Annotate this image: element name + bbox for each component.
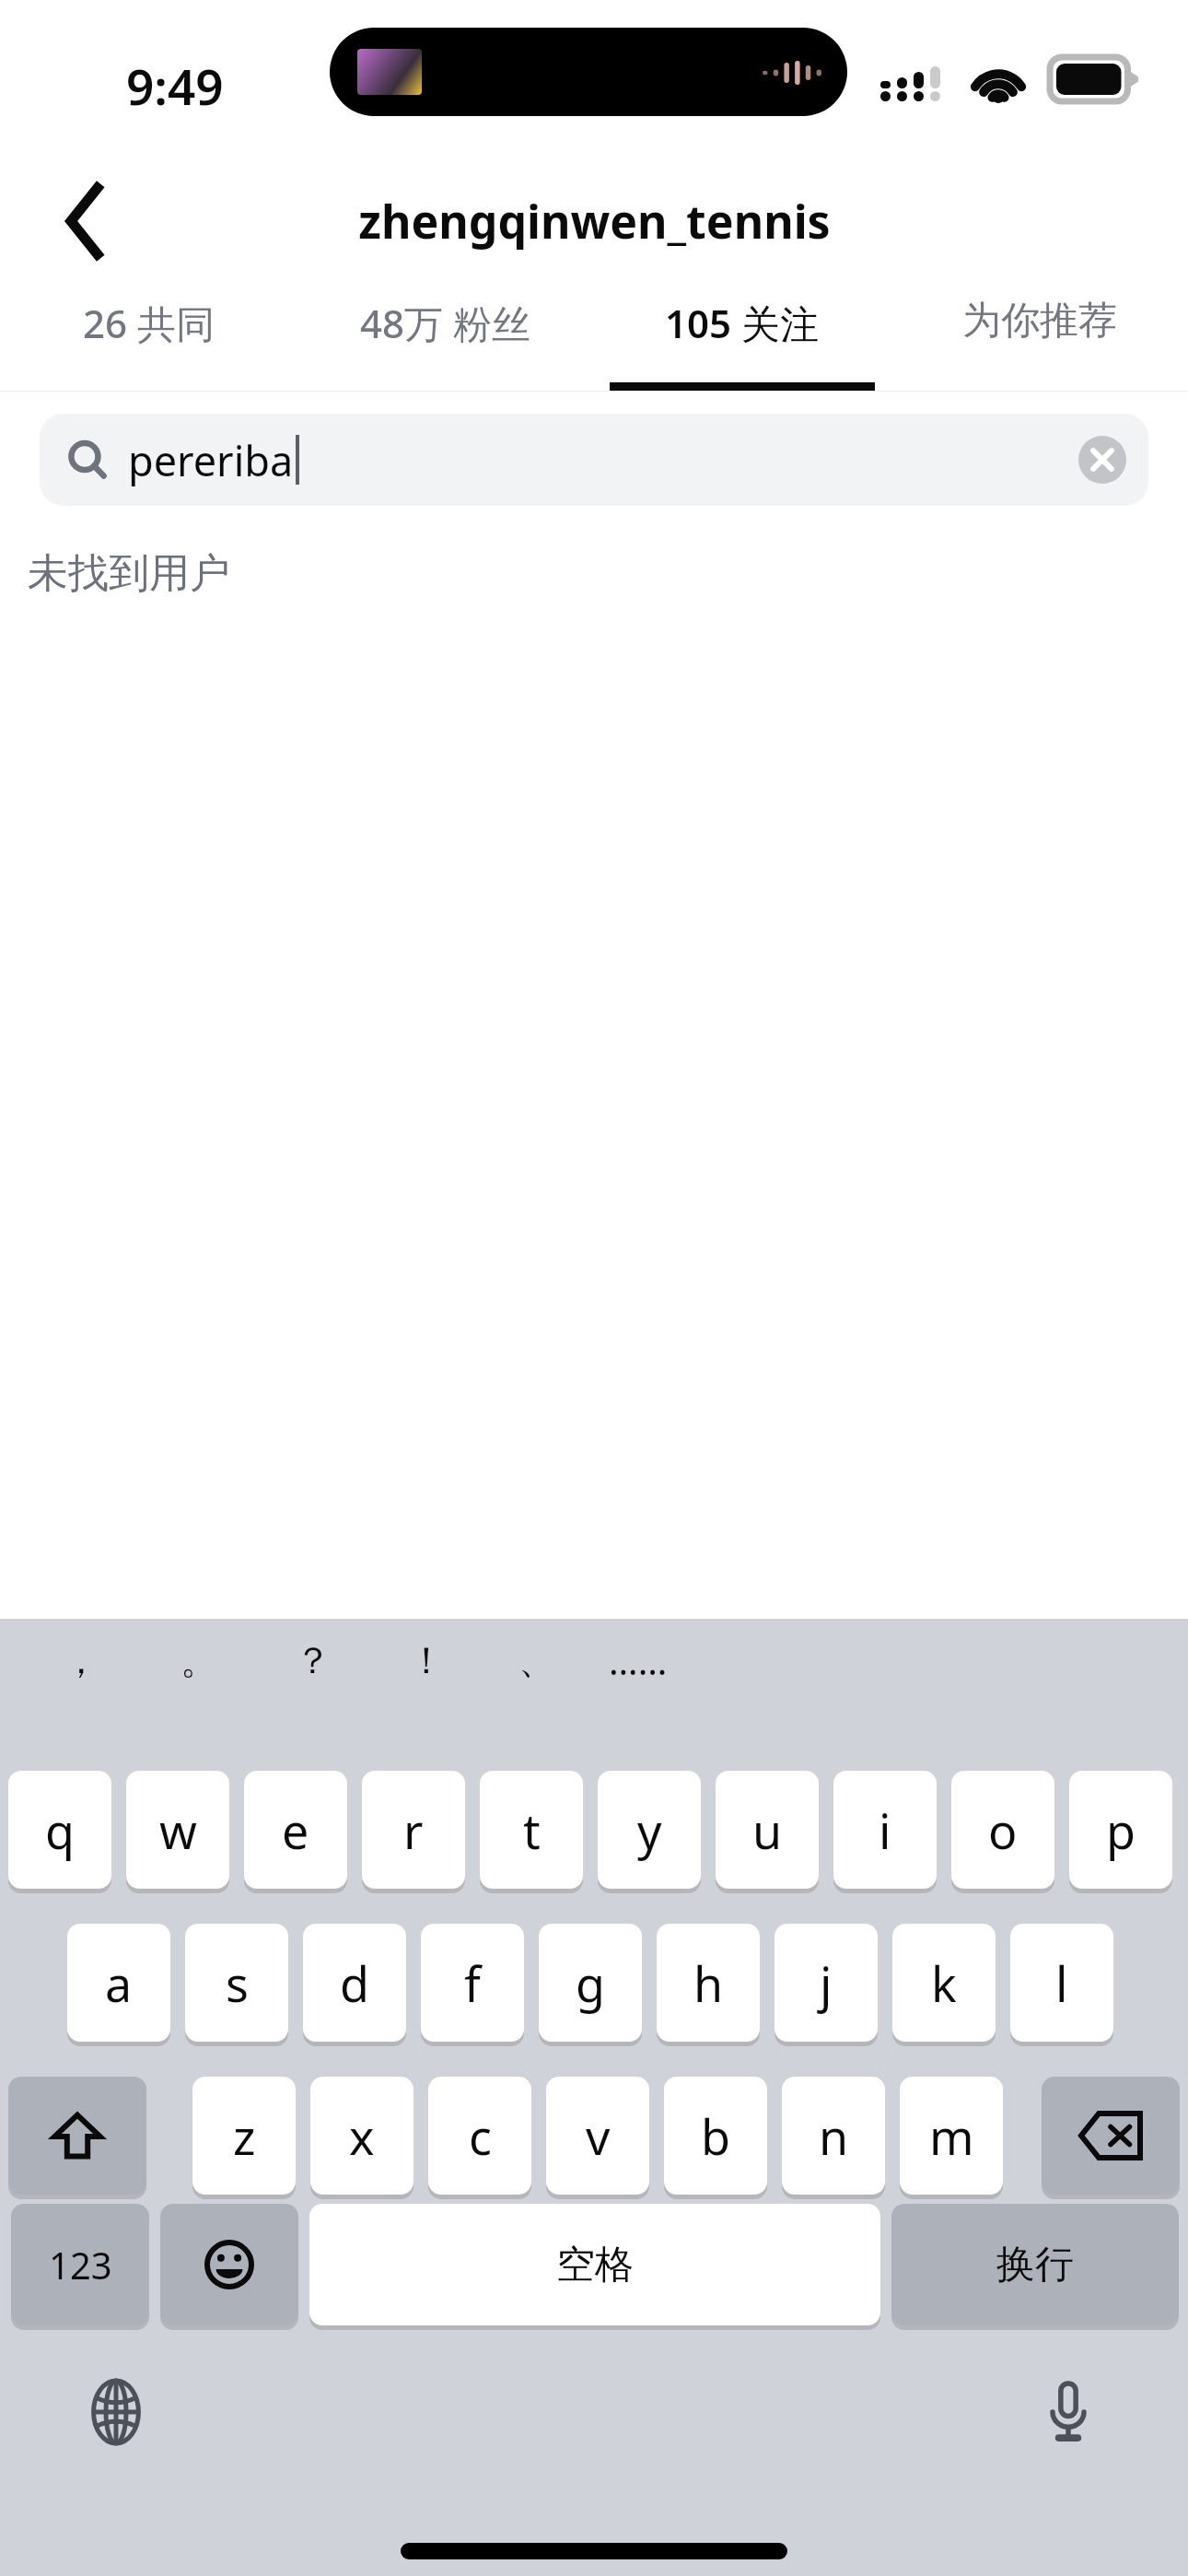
staticText: s bbox=[226, 1950, 249, 2016]
staticText: n bbox=[819, 2103, 849, 2169]
button[interactable]: w bbox=[126, 1771, 229, 1889]
button[interactable]: r bbox=[362, 1771, 465, 1889]
button[interactable]: Backspace bbox=[1042, 2077, 1180, 2195]
button[interactable]: o bbox=[951, 1771, 1054, 1889]
staticText: k bbox=[931, 1950, 957, 2016]
button[interactable]: b bbox=[664, 2077, 767, 2195]
staticText: p bbox=[1106, 1797, 1136, 1863]
button[interactable]: t bbox=[480, 1771, 583, 1889]
button[interactable]: Back bbox=[35, 170, 136, 272]
button[interactable]: pereriba bbox=[40, 414, 1148, 506]
staticText: b bbox=[701, 2103, 730, 2169]
staticText: u bbox=[752, 1797, 783, 1863]
button[interactable]: l bbox=[1010, 1924, 1113, 2042]
button[interactable]: m bbox=[900, 2077, 1003, 2195]
staticText: o bbox=[988, 1797, 1018, 1863]
staticText: i bbox=[879, 1797, 891, 1863]
button[interactable]: y bbox=[598, 1771, 701, 1889]
staticText: h bbox=[693, 1950, 724, 2016]
button[interactable]: Return bbox=[891, 2204, 1179, 2325]
staticText: c bbox=[469, 2103, 492, 2169]
button[interactable]: Numbers bbox=[11, 2204, 149, 2325]
button[interactable]: c bbox=[428, 2077, 531, 2195]
staticText: l bbox=[1055, 1950, 1068, 2016]
staticText: pereriba bbox=[128, 432, 294, 488]
button[interactable]: e bbox=[244, 1771, 347, 1889]
staticText: 105 关注 bbox=[665, 297, 819, 349]
staticText: 、 bbox=[518, 1637, 555, 1683]
staticText: 26 共同 bbox=[83, 297, 215, 349]
button[interactable]: j bbox=[775, 1924, 878, 2042]
staticText: 9:49 bbox=[126, 53, 224, 119]
staticText: e bbox=[282, 1797, 309, 1863]
staticText: ！ bbox=[408, 1637, 445, 1683]
button[interactable]: q bbox=[8, 1771, 111, 1889]
button[interactable]: a bbox=[67, 1924, 170, 2042]
button[interactable]: 26 共同 bbox=[0, 280, 297, 391]
staticText: ？ bbox=[295, 1637, 332, 1683]
button[interactable]: u bbox=[716, 1771, 819, 1889]
button[interactable]: 为你推荐 bbox=[891, 280, 1188, 391]
staticText: y bbox=[637, 1797, 662, 1863]
button[interactable]: k bbox=[892, 1924, 996, 2042]
button[interactable]: ？ bbox=[269, 1619, 357, 1702]
button[interactable]: v bbox=[546, 2077, 649, 2195]
button[interactable]: ， bbox=[37, 1619, 125, 1702]
button[interactable]: n bbox=[782, 2077, 885, 2195]
staticText: 48万 粉丝 bbox=[360, 297, 530, 349]
button[interactable]: Clear text bbox=[1078, 436, 1126, 484]
button[interactable]: i bbox=[833, 1771, 937, 1889]
staticText: …… bbox=[609, 1635, 668, 1685]
staticText: 换行 bbox=[996, 2241, 1074, 2289]
staticText: z bbox=[233, 2103, 256, 2169]
button[interactable]: ！ bbox=[382, 1619, 471, 1702]
button[interactable]: …… bbox=[594, 1619, 682, 1702]
button[interactable]: Emoji bbox=[160, 2204, 298, 2325]
staticText: 未找到用户 bbox=[28, 548, 230, 599]
staticText: q bbox=[45, 1797, 75, 1863]
staticText: 。 bbox=[181, 1637, 217, 1683]
staticText: w bbox=[159, 1797, 197, 1863]
staticText: ， bbox=[63, 1637, 99, 1683]
button[interactable]: 、 bbox=[493, 1619, 581, 1702]
button[interactable]: Shift bbox=[8, 2077, 146, 2195]
staticText: x bbox=[349, 2103, 375, 2169]
staticText: g bbox=[576, 1950, 605, 2016]
button[interactable]: p bbox=[1069, 1771, 1172, 1889]
button[interactable]: s bbox=[185, 1924, 288, 2042]
button[interactable]: 105 关注 bbox=[593, 280, 891, 391]
staticText: j bbox=[820, 1950, 833, 2016]
button[interactable]: f bbox=[421, 1924, 524, 2042]
staticText: m bbox=[929, 2103, 974, 2169]
staticText: 为你推荐 bbox=[962, 297, 1117, 345]
button[interactable]: g bbox=[539, 1924, 642, 2042]
button[interactable]: x bbox=[310, 2077, 413, 2195]
button[interactable]: Change keyboard bbox=[72, 2368, 160, 2456]
button[interactable]: 空格 bbox=[309, 2204, 880, 2325]
staticText: zhengqinwen_tennis bbox=[358, 190, 831, 252]
staticText: a bbox=[105, 1950, 133, 2016]
staticText: r bbox=[403, 1797, 424, 1863]
staticText: 123 bbox=[49, 2240, 112, 2289]
staticText: d bbox=[340, 1950, 369, 2016]
staticText: 空格 bbox=[556, 2241, 634, 2289]
button[interactable]: h bbox=[657, 1924, 760, 2042]
staticText: f bbox=[464, 1950, 481, 2016]
button[interactable]: z bbox=[192, 2077, 296, 2195]
button[interactable]: 48万 粉丝 bbox=[297, 280, 593, 391]
button[interactable]: d bbox=[303, 1924, 406, 2042]
staticText: v bbox=[586, 2103, 611, 2169]
button[interactable]: Voice input bbox=[1024, 2368, 1112, 2456]
button[interactable]: 。 bbox=[155, 1619, 243, 1702]
staticText: t bbox=[523, 1797, 541, 1863]
